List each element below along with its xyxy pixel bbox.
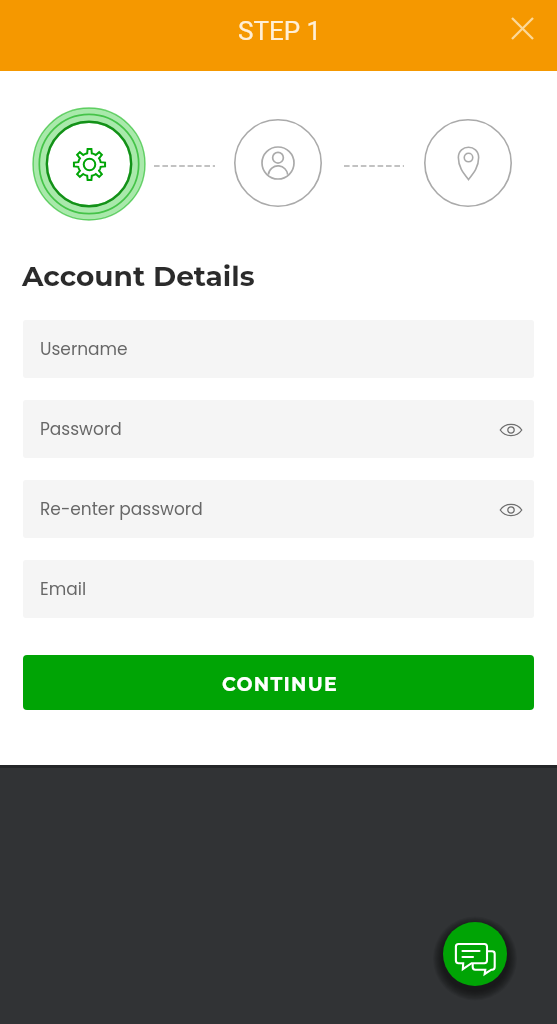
button[interactable]: Show password [491, 409, 531, 449]
button[interactable]: Step 3 location [424, 119, 512, 207]
button[interactable]: Username [23, 320, 534, 378]
button[interactable]: CONTINUE [23, 655, 534, 710]
button[interactable]: Password [23, 400, 534, 458]
button[interactable]: Step 1 account details [31, 106, 147, 222]
staticText: Account Details [22, 259, 255, 293]
button[interactable]: Show password [491, 489, 531, 529]
staticText: Password [40, 417, 122, 441]
button[interactable]: Step 2 profile [234, 119, 322, 207]
button[interactable]: Email [23, 560, 534, 618]
button[interactable]: Chat support [443, 922, 507, 986]
button[interactable]: Re-enter password [23, 480, 534, 538]
staticText: Email [40, 577, 87, 601]
staticText: Username [40, 337, 128, 361]
button[interactable]: Close [499, 5, 545, 51]
staticText: CONTINUE [222, 673, 339, 696]
staticText: STEP 1 [238, 16, 322, 46]
staticText: Re-enter password [40, 497, 203, 521]
